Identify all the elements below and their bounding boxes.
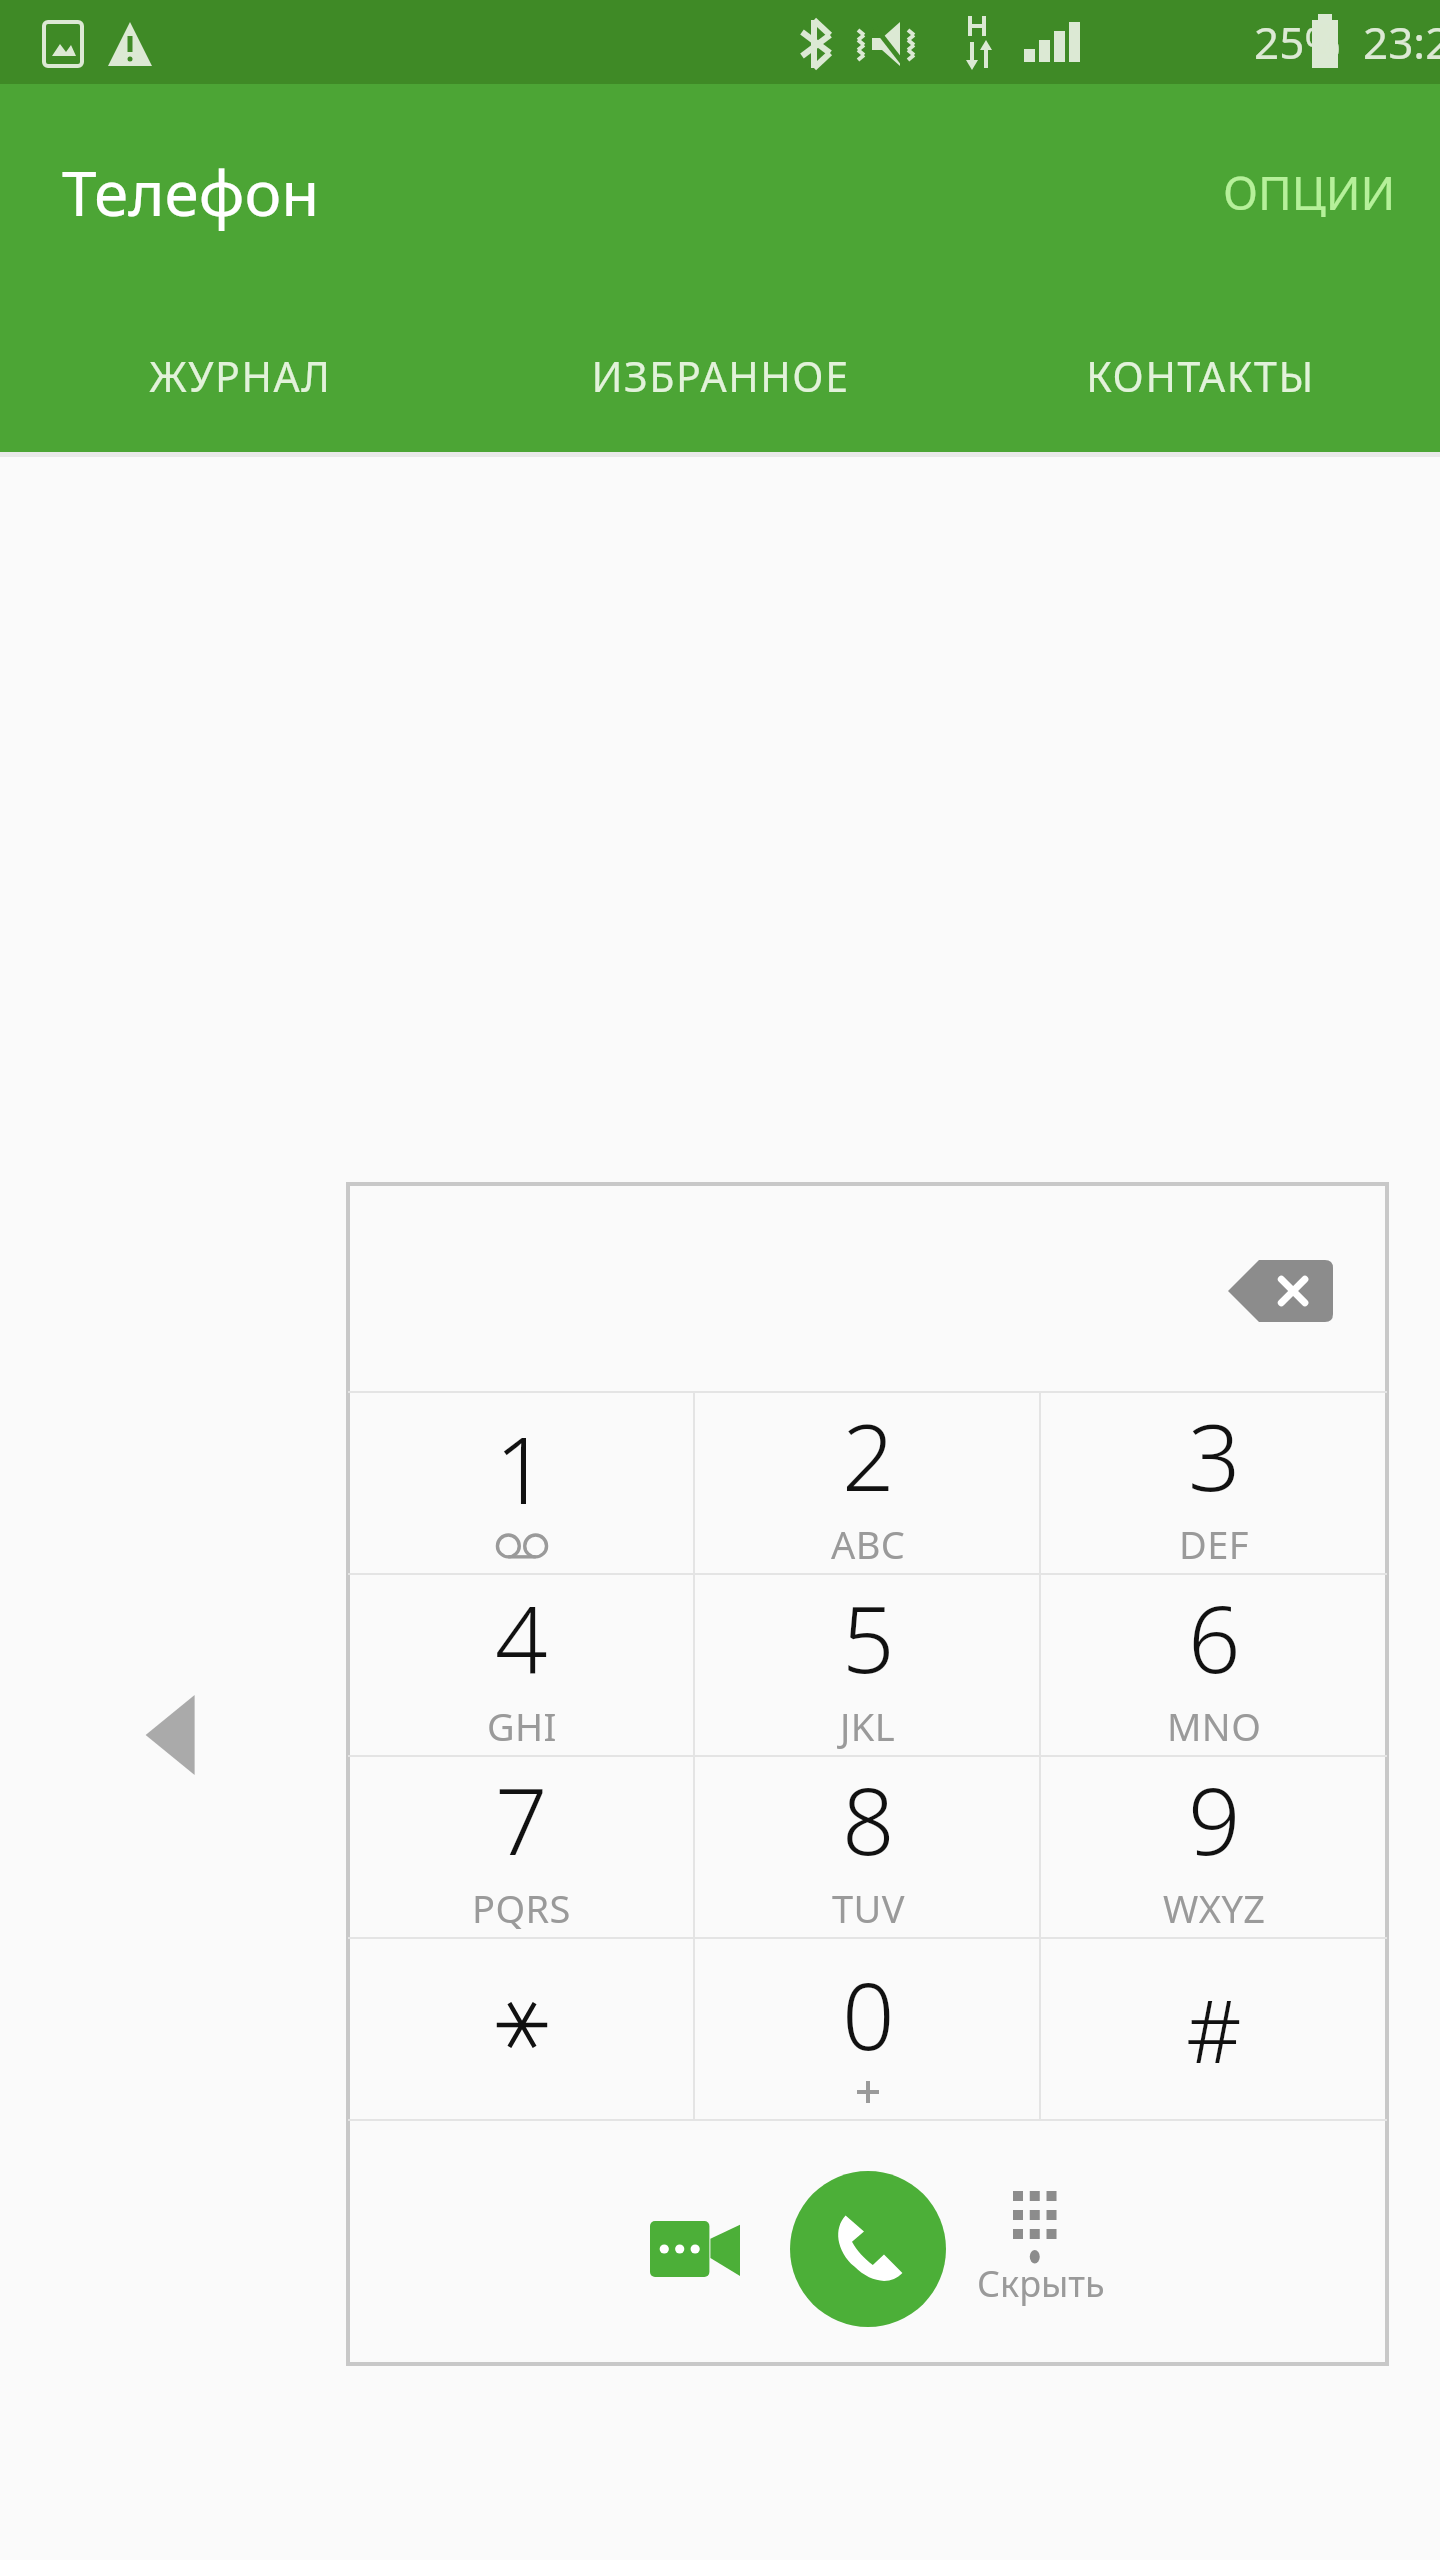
button[interactable]: 9: [1041, 1757, 1387, 1937]
staticText: JKL: [840, 1700, 896, 1752]
staticText: GHI: [487, 1700, 557, 1752]
staticText: ABC: [831, 1518, 906, 1570]
staticText: #: [1186, 1971, 1242, 2088]
staticText: PQRS: [472, 1882, 571, 1934]
button[interactable]: 3: [1041, 1393, 1387, 1573]
staticText: Телефон: [62, 150, 320, 234]
staticText: ИЗБРАННОЕ: [591, 348, 850, 404]
button[interactable]: 8: [695, 1757, 1041, 1937]
button[interactable]: Video call: [620, 2174, 770, 2324]
staticText: 0: [842, 1952, 895, 2077]
staticText: 4: [495, 1575, 548, 1700]
staticText: 6: [1188, 1575, 1241, 1700]
button[interactable]: 4: [348, 1575, 695, 1755]
staticText: 23:21: [1363, 12, 1440, 72]
staticText: 5: [842, 1575, 895, 1700]
staticText: КОНТАКТЫ: [1086, 348, 1315, 404]
staticText: MNO: [1167, 1700, 1262, 1752]
staticText: 25%: [1254, 12, 1341, 72]
button[interactable]: 2: [695, 1393, 1041, 1573]
button[interactable]: КОНТАКТЫ: [960, 300, 1440, 452]
staticText: ОПЦИИ: [1223, 161, 1396, 224]
staticText: 3: [1188, 1393, 1241, 1518]
staticText: 9: [1188, 1757, 1241, 1882]
staticText: ЖУРНАЛ: [149, 348, 332, 404]
button[interactable]: 6: [1041, 1575, 1387, 1755]
staticText: TUV: [832, 1882, 905, 1934]
button[interactable]: [348, 1939, 695, 2119]
button[interactable]: ИЗБРАННОЕ: [480, 300, 960, 452]
staticText: 2: [842, 1393, 895, 1518]
button[interactable]: Call: [790, 2171, 946, 2327]
button[interactable]: ОПЦИИ: [1203, 143, 1416, 242]
staticText: DEF: [1179, 1518, 1249, 1570]
button[interactable]: 1: [348, 1393, 695, 1573]
button[interactable]: 5: [695, 1575, 1041, 1755]
button[interactable]: 7: [348, 1757, 695, 1937]
staticText: 8: [842, 1757, 895, 1882]
button[interactable]: Open panel: [140, 1685, 210, 1785]
staticText: WXYZ: [1163, 1882, 1266, 1934]
button[interactable]: Скрыть: [956, 2164, 1126, 2334]
button[interactable]: 0: [695, 1939, 1041, 2119]
button[interactable]: #: [1041, 1939, 1387, 2119]
staticText: 1: [495, 1406, 548, 1531]
staticText: Скрыть: [977, 2259, 1105, 2308]
staticText: 7: [495, 1757, 548, 1882]
button[interactable]: ЖУРНАЛ: [0, 300, 480, 452]
button[interactable]: Backspace: [1225, 1246, 1335, 1336]
